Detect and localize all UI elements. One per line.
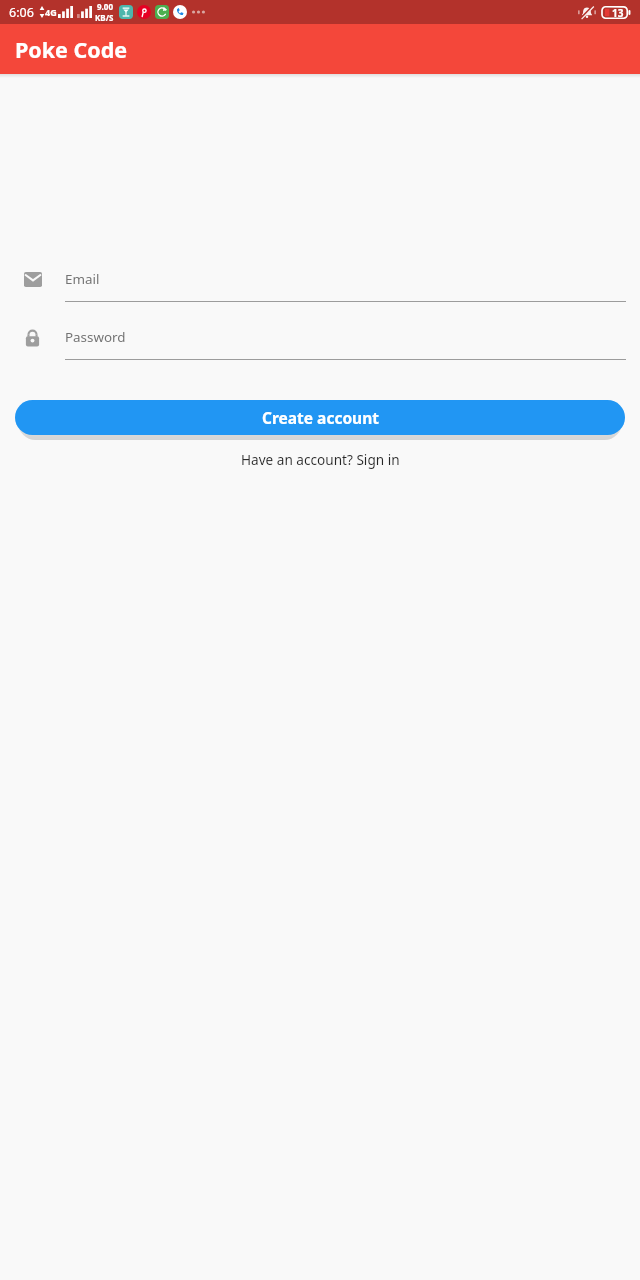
staticText: KB/S xyxy=(95,12,114,23)
button[interactable]: Email xyxy=(16,260,626,302)
staticText: 13 xyxy=(612,6,624,20)
staticText: Email xyxy=(65,270,100,288)
other: Email xyxy=(24,272,42,287)
staticText: 6:06 xyxy=(9,4,34,21)
staticText: Create account xyxy=(262,407,379,428)
button[interactable]: Create account xyxy=(15,400,625,435)
staticText: 9.00 xyxy=(97,1,113,12)
button[interactable]: Password xyxy=(16,318,626,360)
staticText: 4G xyxy=(45,6,57,18)
other: Password xyxy=(25,328,40,347)
staticText: Password xyxy=(65,328,126,346)
other: Silent mode xyxy=(578,5,596,20)
staticText: Have an account? Sign in xyxy=(241,450,400,469)
staticText: Poke Code xyxy=(15,35,128,64)
button[interactable]: Have an account? Sign in xyxy=(0,450,640,469)
